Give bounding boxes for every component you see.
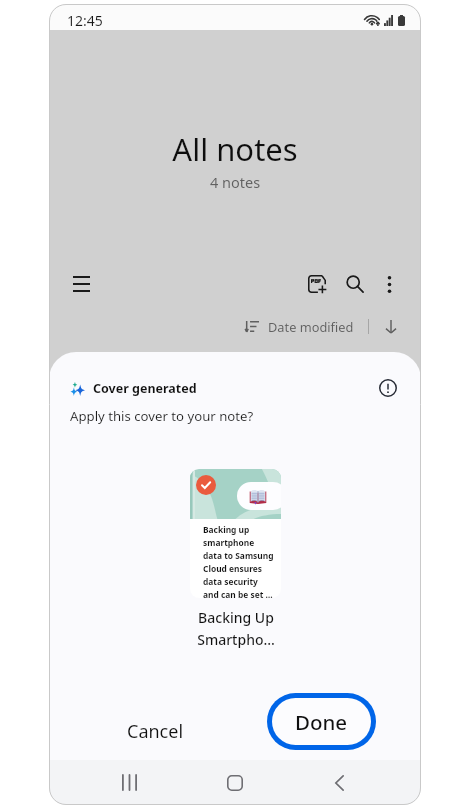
button[interactable]: Menu <box>61 264 101 304</box>
button[interactable]: Info <box>375 377 401 399</box>
button[interactable]: Backing up smartphone data to Samsung Cl… <box>190 469 281 598</box>
staticText: Date modified <box>268 318 354 335</box>
button[interactable]: More options <box>370 265 408 303</box>
staticText: Apply this cover to your note? <box>70 407 254 425</box>
staticText: 12:45 <box>67 11 103 30</box>
button[interactable]: Home <box>182 760 287 805</box>
button[interactable]: Cancel <box>63 693 235 750</box>
staticText: Cover generated <box>93 380 197 397</box>
button[interactable]: Done <box>272 698 371 745</box>
staticText: All notes <box>49 128 421 170</box>
button[interactable]: Search <box>335 264 375 304</box>
button[interactable]: Add PDF <box>297 264 337 304</box>
button[interactable]: Back <box>287 760 392 805</box>
staticText: Backing up smartphone data to Samsung Cl… <box>203 524 274 598</box>
staticText: Done <box>295 708 348 736</box>
button[interactable]: Date modified <box>242 315 357 338</box>
button[interactable]: Recents <box>77 760 182 805</box>
staticText: Cancel <box>127 719 184 744</box>
staticText: 4 notes <box>49 172 421 192</box>
button[interactable]: Sort direction <box>377 313 405 339</box>
staticText: Backing Up Smartpho… <box>197 608 275 649</box>
